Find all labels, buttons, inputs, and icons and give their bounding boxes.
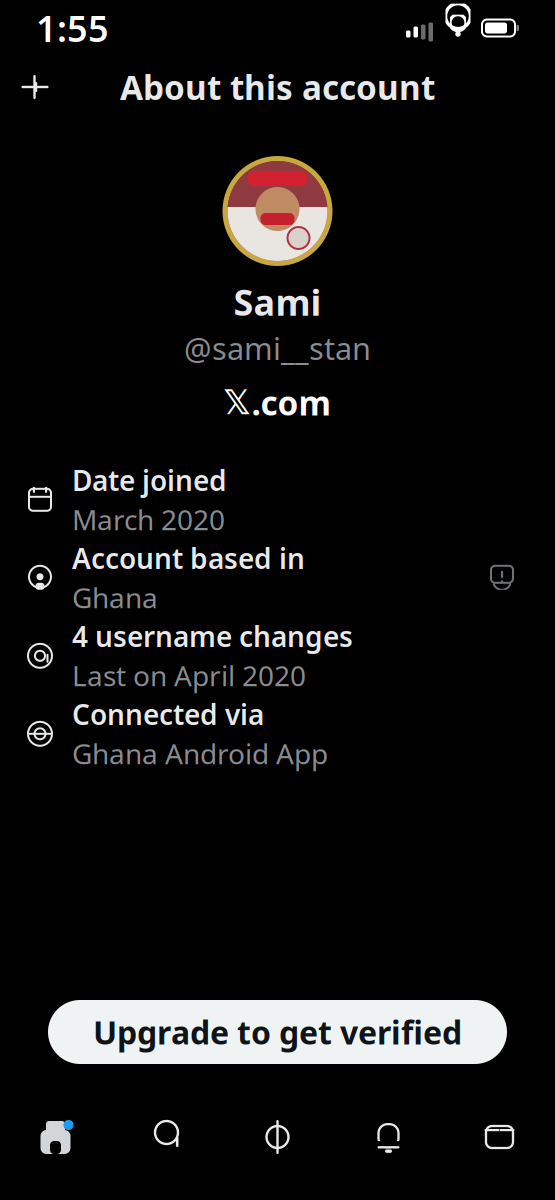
staticText: Ghana — [72, 579, 158, 616]
staticText: 𝕏 — [223, 384, 250, 421]
button[interactable]: Back — [6, 58, 64, 116]
staticText: 1:55 — [36, 4, 109, 52]
staticText: 4 username changes — [72, 618, 353, 655]
staticText: .com — [251, 380, 331, 425]
button[interactable]: Grok — [222, 1104, 333, 1170]
staticText: Account based in — [72, 540, 305, 577]
button[interactable]: Upgrade to get verified — [48, 1000, 507, 1064]
staticText: Date joined — [72, 462, 227, 499]
staticText: Last on April 2020 — [72, 657, 306, 694]
button[interactable]: Home — [0, 1104, 111, 1170]
staticText: Sami — [233, 278, 321, 326]
staticText: March 2020 — [72, 501, 225, 538]
staticText: Upgrade to get verified — [93, 1011, 462, 1053]
button[interactable]: Messages — [444, 1104, 555, 1170]
button[interactable]: Search — [111, 1104, 222, 1170]
staticText: About this account — [120, 65, 435, 109]
staticText: @sami__stan — [184, 328, 371, 368]
button[interactable]: Notifications — [333, 1104, 444, 1170]
staticText: Connected via — [72, 696, 264, 733]
staticText: Ghana Android App — [72, 735, 328, 772]
